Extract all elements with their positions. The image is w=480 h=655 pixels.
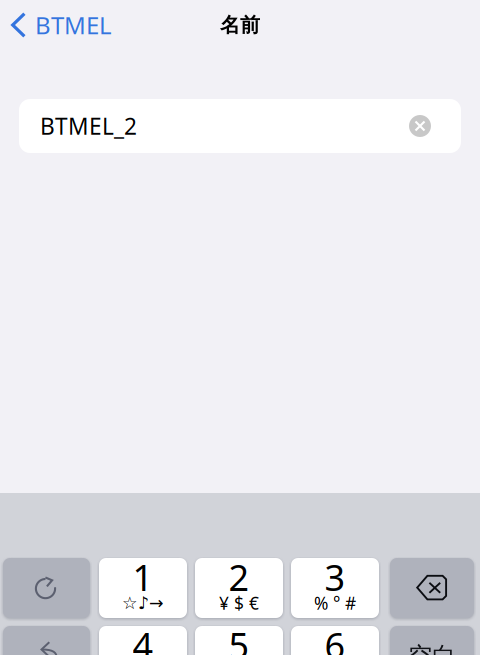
button[interactable]: BTMEL [0,1,112,49]
staticText: 空白 [408,641,456,655]
staticText: ☆♪→ [122,593,164,613]
button[interactable]: 6 [291,626,379,655]
staticText: 5 [228,621,249,655]
button[interactable]: 空白 [390,626,474,655]
button[interactable]: Clear text [409,115,431,137]
staticText: ¥ $ € [219,591,259,614]
staticText: 1 [132,553,153,601]
staticText: % ° # [314,591,356,614]
button[interactable]: Redo [3,558,90,618]
button[interactable]: Delete [390,558,474,618]
staticText: 6 [324,621,345,655]
button[interactable]: Undo [3,626,90,655]
button[interactable]: 2 [195,558,283,618]
staticText: 4 [132,621,153,655]
staticText: 名前 [220,13,260,37]
staticText: BTMEL [35,9,112,41]
staticText: 2 [228,553,249,601]
button[interactable]: 1 [99,558,187,618]
staticText: 3 [324,553,345,601]
button[interactable]: 5 [195,626,283,655]
button[interactable]: 4 [99,626,187,655]
button[interactable]: 3 [291,558,379,618]
staticText: BTMEL_2 [40,111,137,141]
